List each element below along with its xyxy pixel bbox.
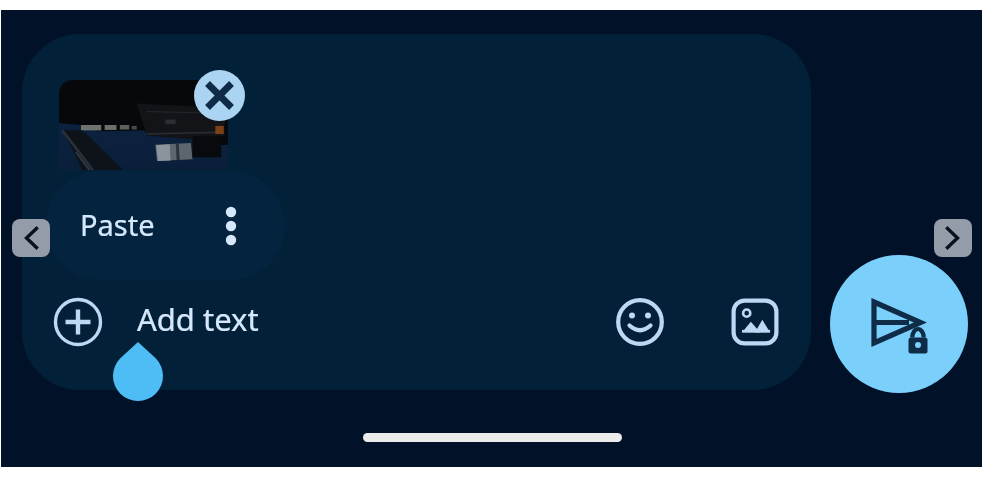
button[interactable]: Send message bbox=[830, 255, 968, 393]
button[interactable]: More options bbox=[208, 203, 254, 249]
button[interactable]: Attached photo bbox=[22, 34, 811, 390]
button[interactable]: Gallery bbox=[729, 296, 781, 348]
staticText: Paste bbox=[80, 205, 155, 244]
button[interactable]: Remove attachment bbox=[194, 70, 245, 121]
button[interactable]: Paste bbox=[46, 171, 285, 280]
button[interactable]: Add text bbox=[137, 292, 547, 352]
button[interactable]: Attached photo bbox=[59, 80, 228, 170]
button[interactable]: Previous bbox=[12, 219, 50, 257]
button[interactable]: Add attachment bbox=[52, 296, 104, 348]
button[interactable]: Next bbox=[934, 219, 972, 257]
staticText: Add text bbox=[137, 298, 259, 340]
button[interactable]: Emoji bbox=[614, 296, 666, 348]
